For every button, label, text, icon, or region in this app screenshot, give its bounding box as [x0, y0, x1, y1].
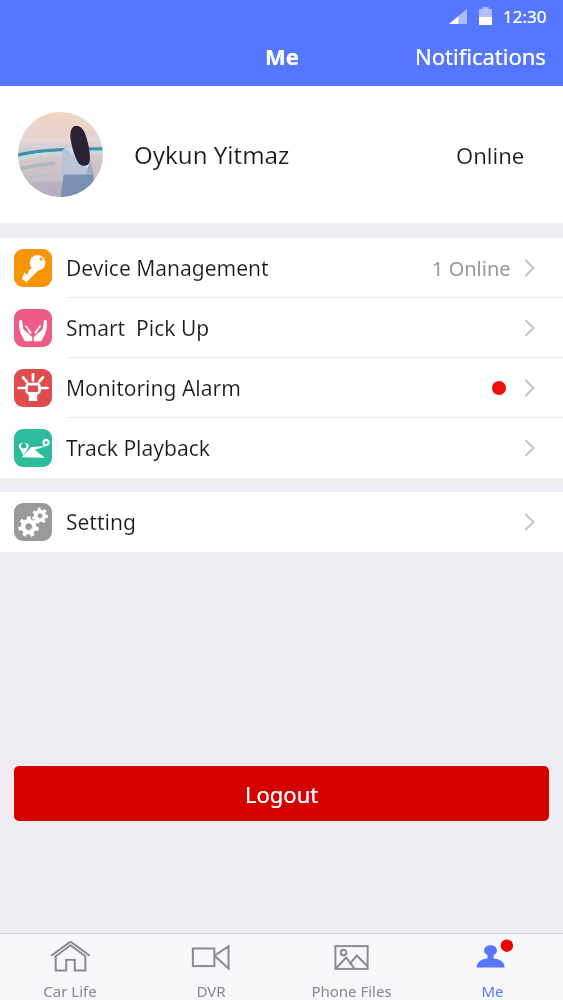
button[interactable]: Profile photo: [0, 86, 563, 223]
button[interactable]: Setting: [0, 492, 563, 552]
staticText: Notifications: [415, 41, 546, 71]
staticText: Car Life: [43, 981, 97, 1000]
button[interactable]: Logout: [14, 766, 549, 821]
staticText: Smart Pick Up: [66, 314, 210, 343]
button[interactable]: Me: [422, 934, 563, 1000]
staticText: 1 Online: [432, 255, 511, 282]
button[interactable]: Smart Pick Up: [0, 298, 563, 358]
staticText: Me: [265, 41, 299, 71]
staticText: Track Playback: [66, 434, 211, 463]
button[interactable]: Track Playback: [0, 418, 563, 478]
button[interactable]: Notifications: [395, 33, 563, 79]
staticText: Monitoring Alarm: [66, 374, 241, 403]
staticText: Logout: [245, 779, 319, 809]
staticText: Me: [481, 981, 504, 1000]
button[interactable]: Monitoring Alarm: [0, 358, 563, 418]
staticText: 12:30: [503, 5, 547, 28]
staticText: Online: [456, 140, 525, 170]
button[interactable]: DVR: [140, 934, 281, 1000]
button[interactable]: Car Life: [0, 934, 140, 1000]
button[interactable]: Phone Files: [281, 934, 422, 1000]
staticText: DVR: [196, 981, 226, 1000]
button[interactable]: Device Management: [0, 238, 563, 298]
other: Profile photo: [18, 112, 103, 197]
staticText: Phone Files: [311, 981, 392, 1000]
staticText: Oykun Yitmaz: [134, 138, 290, 171]
staticText: Device Management: [66, 254, 269, 283]
staticText: Setting: [66, 508, 136, 537]
